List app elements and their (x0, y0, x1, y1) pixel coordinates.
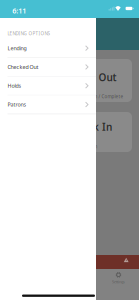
staticText: Holds (7, 82, 21, 89)
staticText: Patrons (7, 101, 26, 108)
staticText: Circulation (73, 143, 97, 150)
button[interactable]: Checked Out (0, 58, 96, 76)
button[interactable] (7, 59, 132, 102)
staticText: Checked Out (7, 63, 38, 71)
button[interactable]: Patrons (0, 95, 96, 114)
staticText: Check In (70, 120, 112, 134)
button[interactable]: Holds (0, 77, 96, 95)
staticText: Circulation / Complete (73, 93, 123, 100)
button[interactable]: Settings (101, 271, 135, 286)
staticText: Settings (112, 279, 125, 284)
staticText: Lending (7, 44, 26, 52)
staticText: LENDING OPTIONS (7, 30, 49, 37)
button[interactable]: Lending (0, 39, 96, 57)
staticText: 6:11 (12, 6, 26, 16)
staticText: Check Out (66, 70, 116, 84)
button[interactable] (7, 112, 132, 152)
